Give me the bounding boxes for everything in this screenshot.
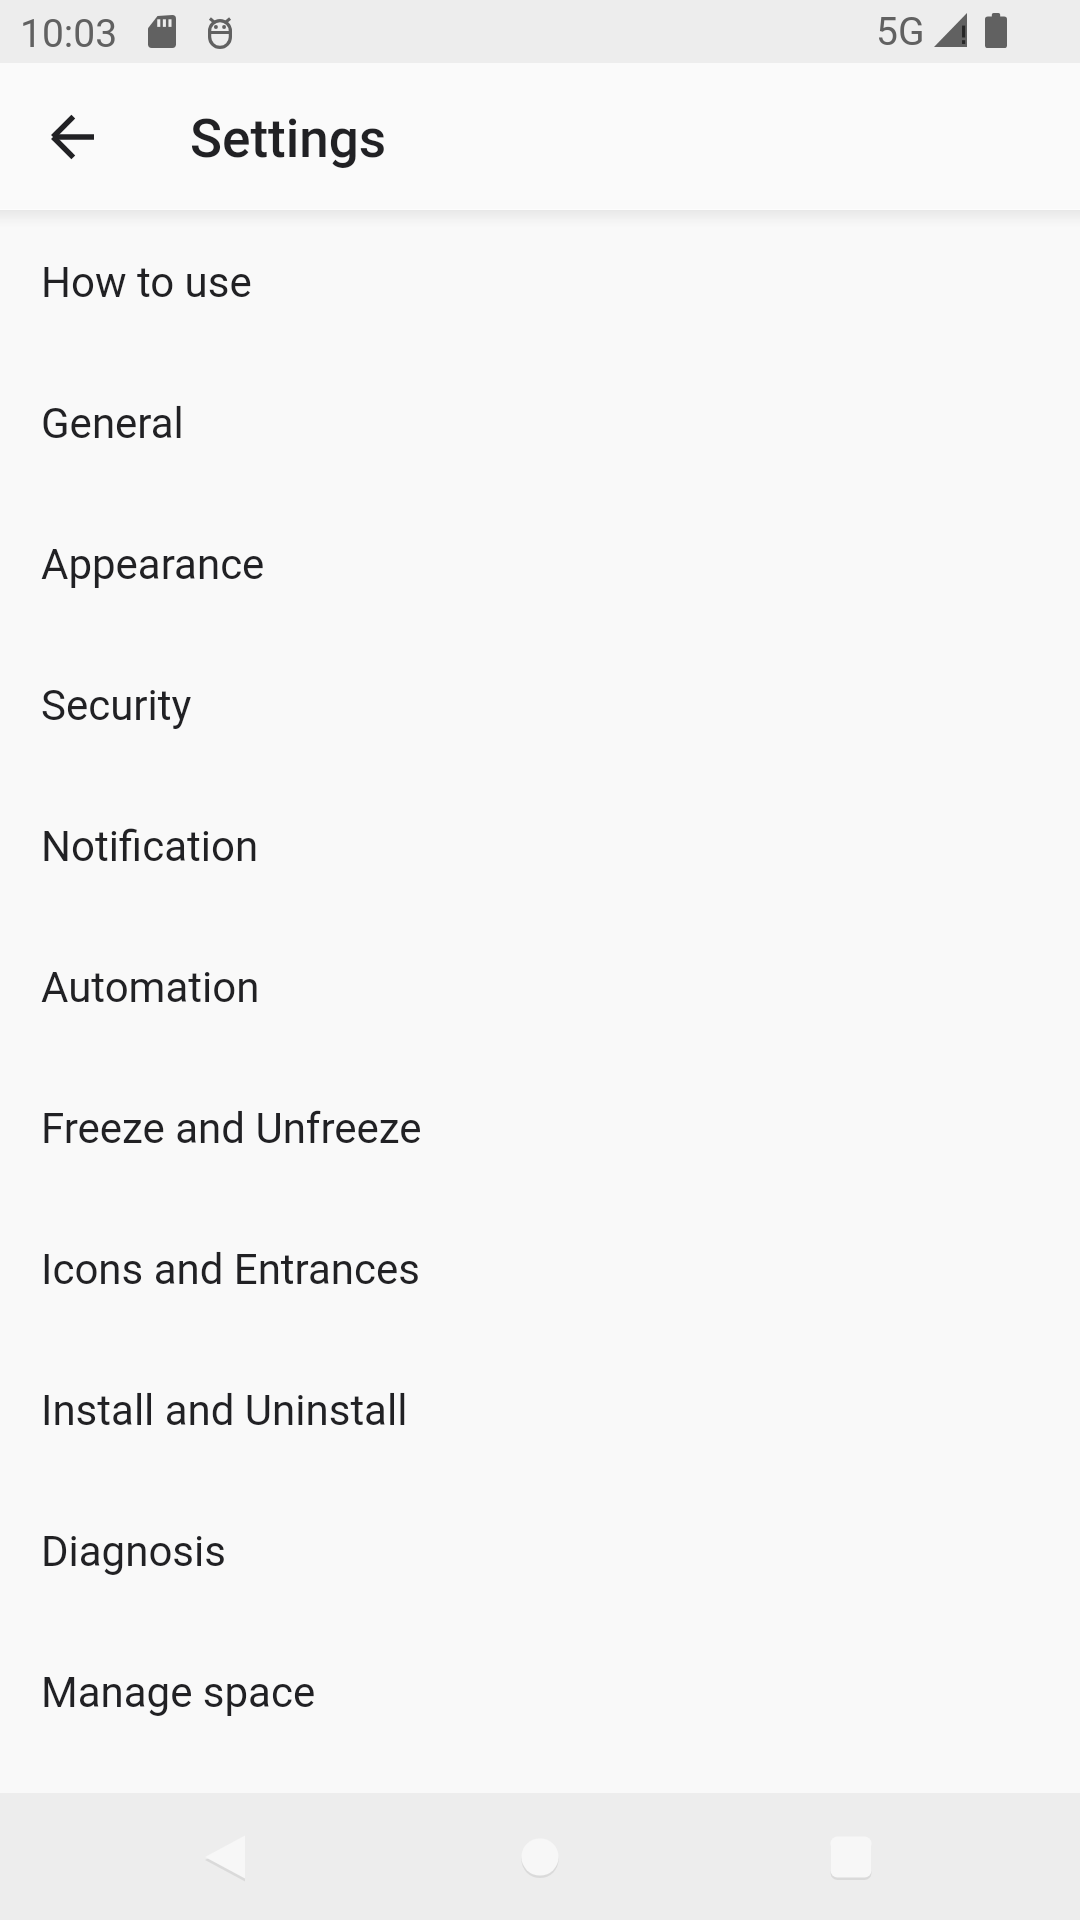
staticText: Security bbox=[41, 681, 192, 730]
button[interactable]: General bbox=[0, 353, 1080, 494]
staticText: Icons and Entrances bbox=[41, 1245, 420, 1294]
button[interactable]: Automation bbox=[0, 917, 1080, 1058]
staticText: Notification bbox=[41, 822, 259, 871]
button[interactable]: Back bbox=[10, 74, 136, 200]
staticText: 10:03 bbox=[20, 11, 118, 57]
staticText: Automation bbox=[41, 963, 260, 1012]
staticText: How to use bbox=[41, 258, 252, 307]
staticText: Manage space bbox=[41, 1668, 316, 1717]
button[interactable]: Install and Uninstall bbox=[0, 1340, 1080, 1481]
button[interactable]: Recents bbox=[788, 1793, 914, 1920]
staticText: Freeze and Unfreeze bbox=[41, 1104, 422, 1153]
staticText: Diagnosis bbox=[41, 1527, 226, 1576]
staticText: General bbox=[41, 399, 184, 448]
button[interactable]: Freeze and Unfreeze bbox=[0, 1058, 1080, 1199]
button[interactable]: Manage space bbox=[0, 1622, 1080, 1763]
staticText: 5G bbox=[876, 9, 925, 55]
button[interactable]: Security bbox=[0, 635, 1080, 776]
button[interactable]: Notification bbox=[0, 776, 1080, 917]
staticText: Appearance bbox=[41, 540, 265, 589]
staticText: Settings bbox=[190, 108, 387, 170]
staticText: Install and Uninstall bbox=[41, 1386, 408, 1435]
button[interactable]: Diagnosis bbox=[0, 1481, 1080, 1622]
button[interactable]: Appearance bbox=[0, 494, 1080, 635]
button[interactable]: How to use bbox=[0, 212, 1080, 353]
button[interactable]: Icons and Entrances bbox=[0, 1199, 1080, 1340]
